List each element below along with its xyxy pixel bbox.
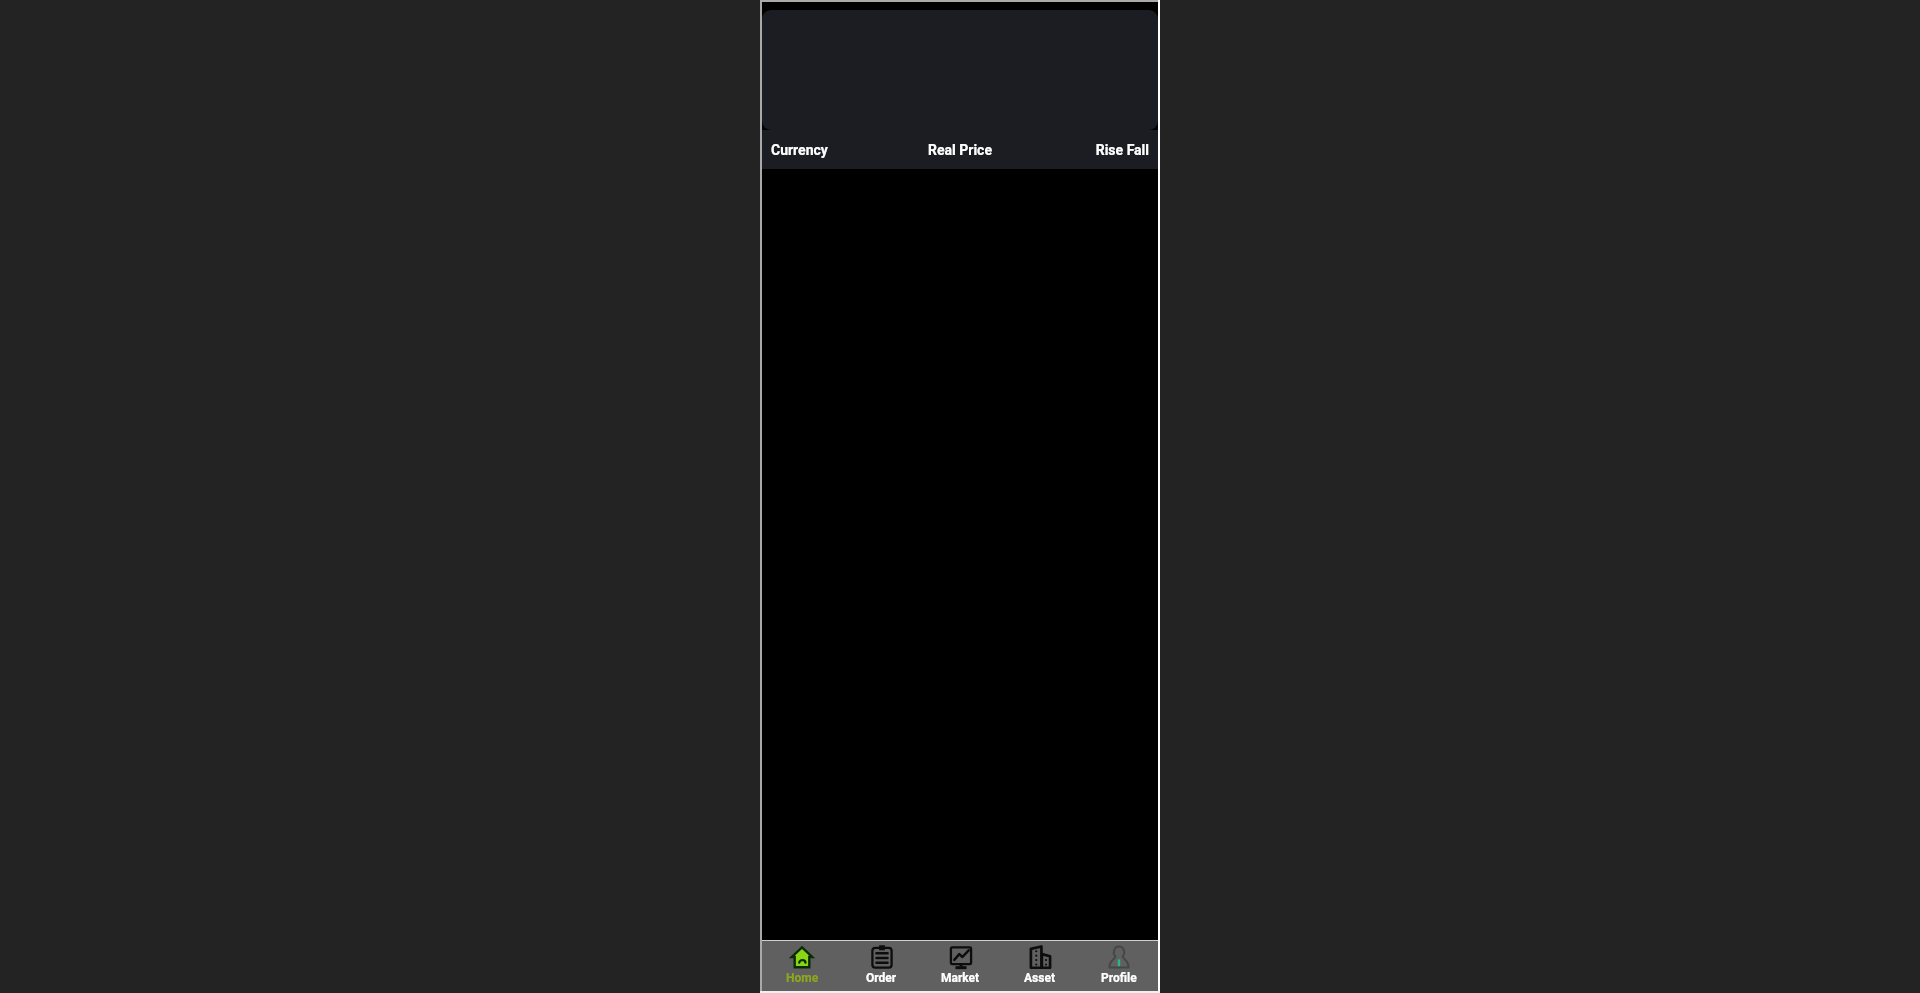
staticText: Home bbox=[786, 971, 819, 985]
button[interactable]: Order bbox=[842, 941, 921, 991]
staticText: Rise Fall bbox=[1023, 142, 1149, 158]
button[interactable]: Home bbox=[762, 941, 842, 991]
button[interactable]: Asset bbox=[1000, 941, 1079, 991]
button[interactable]: Profile bbox=[1079, 941, 1158, 991]
button[interactable]: Market bbox=[921, 941, 1000, 991]
staticText: Order bbox=[866, 971, 897, 985]
staticText: Asset bbox=[1024, 971, 1055, 985]
staticText: Profile bbox=[1101, 971, 1137, 985]
staticText: Real Price bbox=[897, 142, 1023, 158]
staticText: Market bbox=[941, 971, 980, 985]
staticText: Currency bbox=[771, 142, 897, 158]
